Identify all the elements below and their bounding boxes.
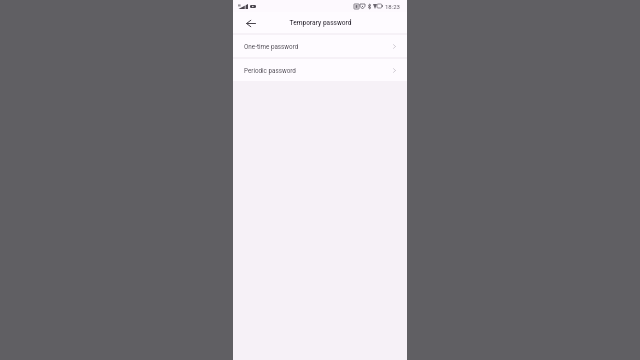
staticText: Temporary password [289, 19, 352, 27]
staticText: Periodic password [244, 67, 296, 74]
staticText: One-time password [244, 43, 299, 50]
button[interactable]: Periodic password [233, 59, 407, 81]
button[interactable]: One-time password [233, 35, 407, 57]
button[interactable]: Back [244, 16, 258, 30]
staticText: 18:23 [385, 3, 400, 10]
